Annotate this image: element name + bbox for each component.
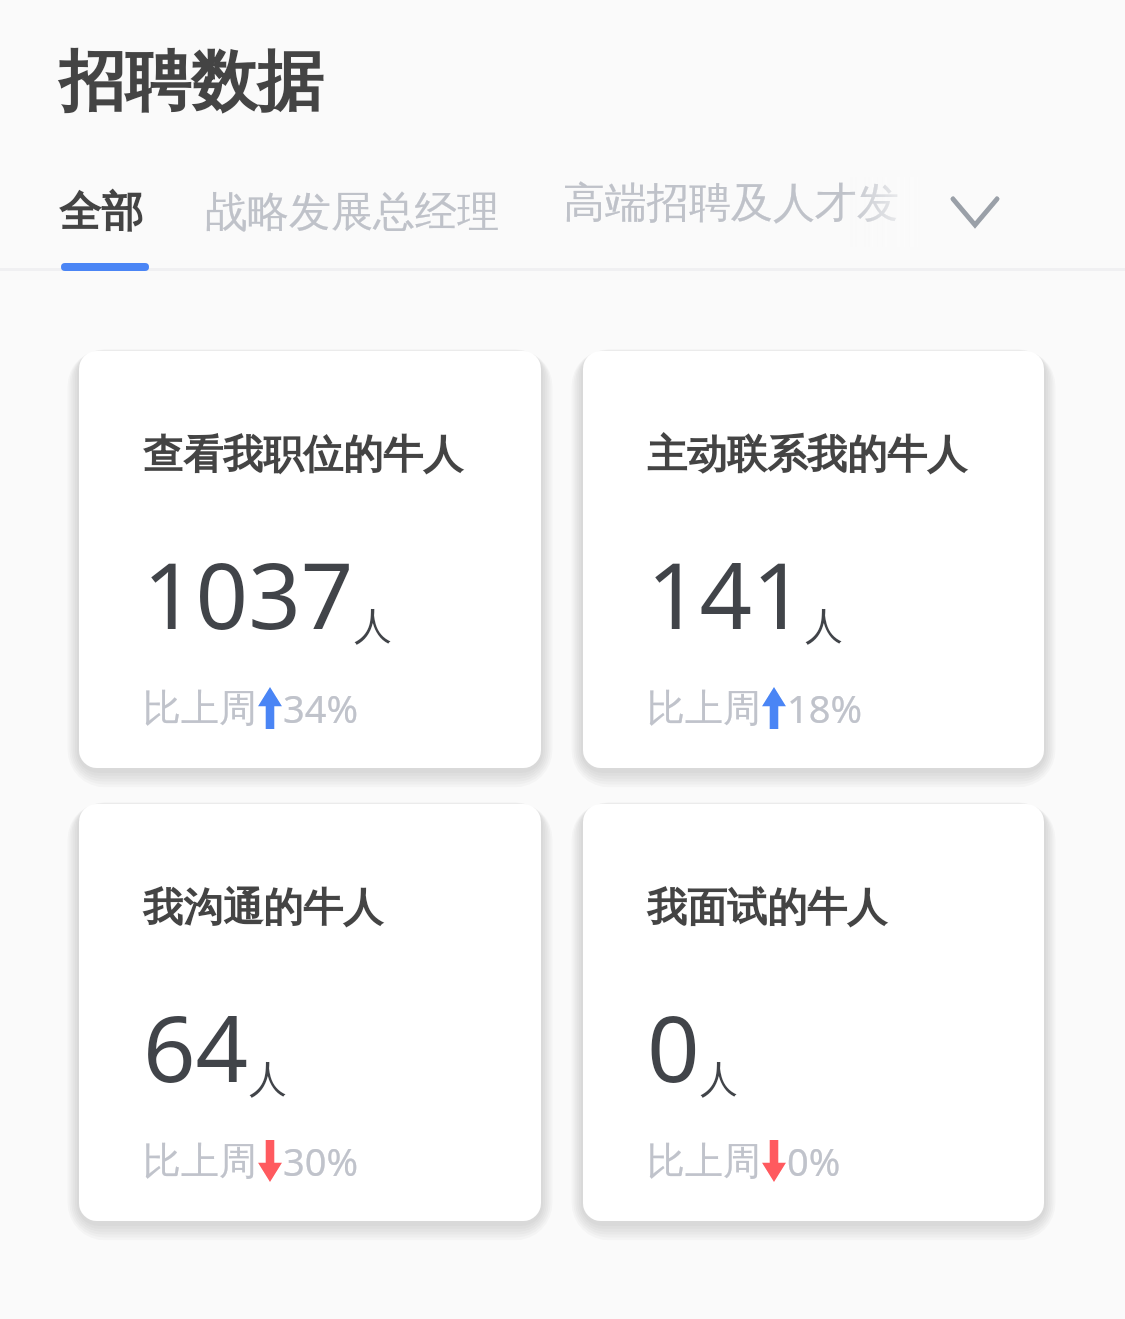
button[interactable]: 我面试的牛人 [583, 804, 1044, 1221]
button[interactable]: 查看我职位的牛人 [79, 351, 541, 768]
staticText: 我沟通的牛人 [143, 882, 383, 932]
staticText: 比上周 [143, 1137, 257, 1185]
staticText: 比上周 [143, 684, 257, 732]
button[interactable]: 我沟通的牛人 [79, 804, 541, 1221]
staticText: 我面试的牛人 [647, 882, 887, 932]
staticText: 人 [249, 1055, 287, 1103]
staticText: 比上周 [647, 684, 761, 732]
staticText: 查看我职位的牛人 [143, 429, 463, 479]
staticText: 人 [354, 602, 392, 650]
button[interactable]: 主动联系我的牛人 [583, 351, 1044, 768]
staticText: 高端招聘及人才发展 [563, 177, 923, 230]
staticText: 招聘数据 [59, 40, 323, 123]
staticText: 0% [787, 1135, 841, 1187]
staticText: 主动联系我的牛人 [647, 429, 967, 479]
button[interactable]: 高端招聘及人才发展 [563, 167, 923, 257]
staticText: 1037 [143, 531, 354, 656]
staticText: 人 [700, 1055, 738, 1103]
staticText: 64 [143, 984, 249, 1109]
staticText: 比上周 [647, 1137, 761, 1185]
staticText: 全部 [59, 186, 143, 239]
button[interactable]: 全部 [59, 176, 143, 249]
staticText: 0 [647, 984, 700, 1109]
button[interactable]: 展开更多筛选 [933, 170, 1017, 254]
staticText: 18% [787, 682, 863, 734]
staticText: 34% [283, 682, 359, 734]
staticText: 人 [805, 602, 843, 650]
staticText: 141 [647, 531, 805, 656]
button[interactable]: 战略发展总经理 [205, 176, 499, 249]
staticText: 战略发展总经理 [205, 186, 499, 239]
staticText: 30% [283, 1135, 359, 1187]
